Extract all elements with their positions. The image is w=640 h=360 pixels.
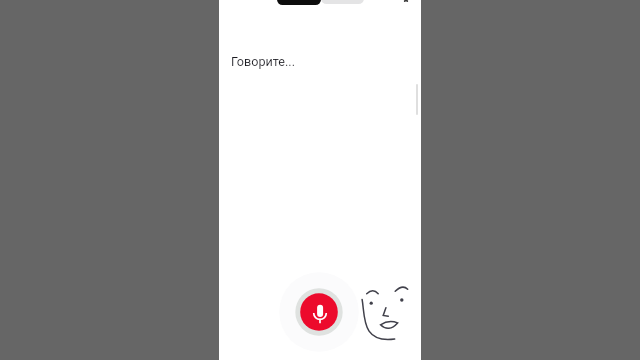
button[interactable]: [321, 0, 364, 4]
button[interactable]: [277, 0, 321, 5]
button[interactable]: Microphone: [279, 272, 359, 352]
staticText: Говорите...: [231, 54, 295, 69]
button[interactable]: Close: [397, 0, 415, 9]
